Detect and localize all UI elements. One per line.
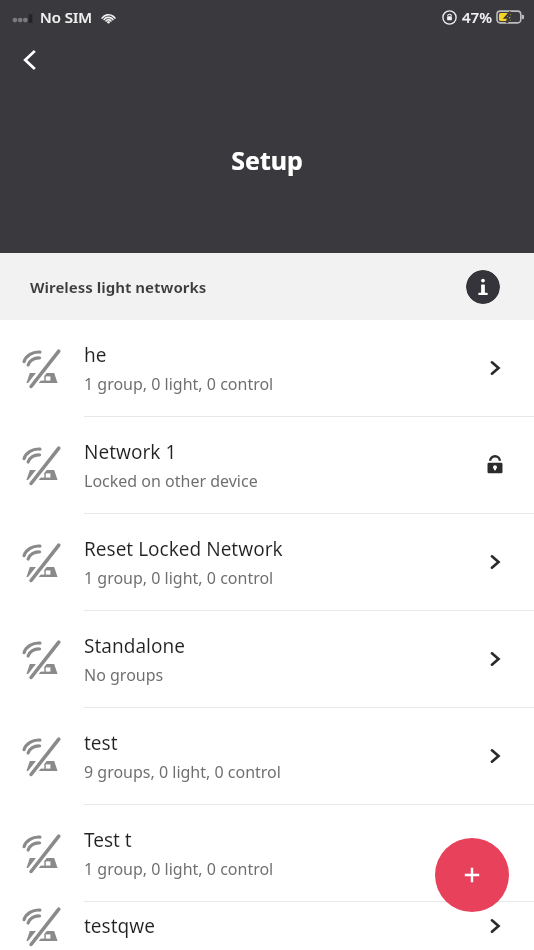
staticText: 1 group, 0 light, 0 control: [84, 858, 274, 880]
staticText: 9 groups, 0 light, 0 control: [84, 761, 281, 783]
staticText: Locked on other device: [84, 470, 258, 492]
staticText: No groups: [84, 664, 164, 686]
button[interactable]: Add network: [435, 838, 509, 912]
staticText: 1 group, 0 light, 0 control: [84, 373, 274, 395]
staticText: Network 1: [84, 439, 177, 465]
button[interactable]: he: [0, 320, 534, 416]
button[interactable]: Information: [466, 270, 500, 304]
staticText: 47%: [462, 7, 492, 27]
button[interactable]: Reset Locked Network: [0, 514, 534, 610]
button[interactable]: Back: [8, 38, 52, 82]
button[interactable]: test: [0, 708, 534, 804]
staticText: testqwe: [84, 913, 155, 939]
staticText: 1 group, 0 light, 0 control: [84, 567, 274, 589]
button[interactable]: Network 1: [0, 417, 534, 513]
button[interactable]: Test t: [0, 805, 534, 901]
staticText: Wireless light networks: [30, 277, 207, 297]
staticText: Test t: [84, 827, 132, 853]
staticText: No SIM: [40, 7, 93, 27]
staticText: Standalone: [84, 633, 185, 659]
staticText: test: [84, 730, 118, 756]
staticText: he: [84, 342, 107, 368]
button[interactable]: testqwe: [0, 902, 534, 950]
staticText: Setup: [0, 143, 534, 177]
button[interactable]: Standalone: [0, 611, 534, 707]
staticText: Reset Locked Network: [84, 536, 283, 562]
